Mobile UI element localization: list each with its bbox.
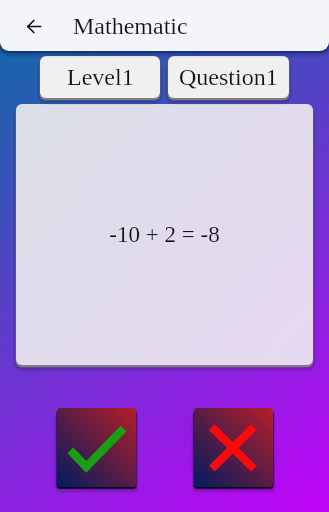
staticText: Level1 [67,64,134,91]
button[interactable]: Wrong answer [194,408,273,487]
button[interactable]: Level1 [40,56,160,98]
button[interactable]: Navigate back [19,11,49,41]
staticText: Mathematic [73,13,188,40]
button[interactable]: Question1 [168,56,289,98]
staticText: -10 + 2 = -8 [109,222,220,247]
staticText: Question1 [179,64,278,91]
button[interactable]: Correct answer [57,408,136,487]
